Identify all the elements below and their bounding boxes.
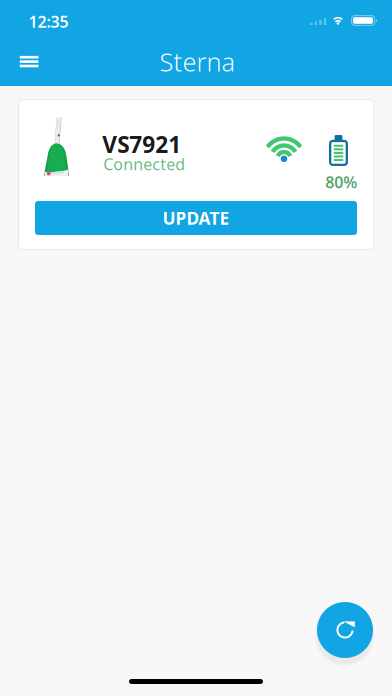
button[interactable]: Menu [6,40,54,84]
button[interactable]: UPDATE [35,201,357,235]
button[interactable]: Refresh [317,602,373,658]
staticText: 12:35 [28,11,68,32]
staticText: Connected [103,153,185,174]
staticText: Sterna [159,45,235,78]
staticText: UPDATE [162,206,229,229]
staticText: VS7921 [102,129,181,159]
staticText: 80% [325,171,357,193]
